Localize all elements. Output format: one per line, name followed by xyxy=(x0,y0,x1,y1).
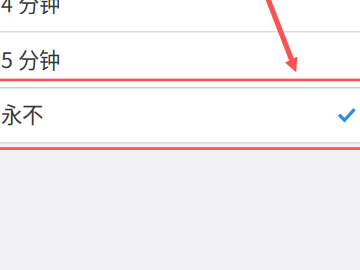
staticText: 5 分钟 xyxy=(1,44,60,74)
button[interactable]: 5 分钟 xyxy=(0,31,360,87)
staticText: 4 分钟 xyxy=(1,0,60,18)
button[interactable]: 永不 xyxy=(0,85,360,141)
button[interactable]: 4 分钟 xyxy=(0,0,360,31)
staticText: 永不 xyxy=(1,98,43,129)
